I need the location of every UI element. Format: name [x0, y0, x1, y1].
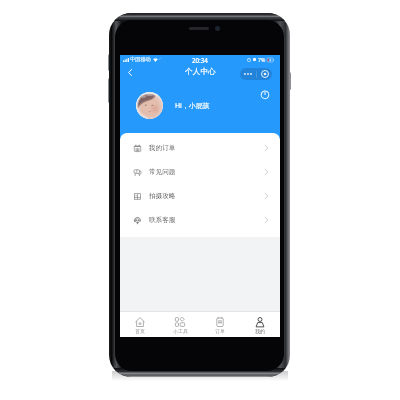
- button[interactable]: More options: [240, 68, 256, 80]
- staticText: 常见问题: [149, 168, 176, 176]
- staticText: 7%: [258, 56, 266, 63]
- staticText: 联系客服: [149, 216, 176, 224]
- button[interactable]: 联系客服: [120, 208, 280, 232]
- button[interactable]: 订单: [200, 312, 240, 337]
- staticText: 拍摄攻略: [149, 192, 176, 200]
- staticText: 中国移动: [130, 56, 151, 63]
- button[interactable]: 拍摄攻略: [120, 184, 280, 208]
- button[interactable]: Close mini program: [257, 68, 272, 80]
- button[interactable]: Back: [123, 64, 137, 80]
- button[interactable]: 我的订单: [120, 136, 280, 160]
- button[interactable]: 常见问题: [120, 160, 280, 184]
- staticText: 我的订单: [149, 144, 176, 152]
- button[interactable]: Log out: [258, 88, 271, 101]
- button[interactable]: 首页: [120, 312, 160, 337]
- staticText: 首页: [135, 328, 145, 334]
- staticText: 我的: [255, 328, 265, 334]
- button[interactable]: Avatar: [136, 92, 163, 119]
- button[interactable]: 小工具: [160, 312, 200, 337]
- staticText: Hi，小屁孩: [175, 101, 210, 110]
- staticText: 20:34: [192, 56, 208, 64]
- staticText: 订单: [215, 328, 225, 334]
- staticText: 小工具: [173, 328, 188, 334]
- staticText: 个人中心: [185, 67, 216, 77]
- button[interactable]: 我的: [240, 312, 280, 337]
